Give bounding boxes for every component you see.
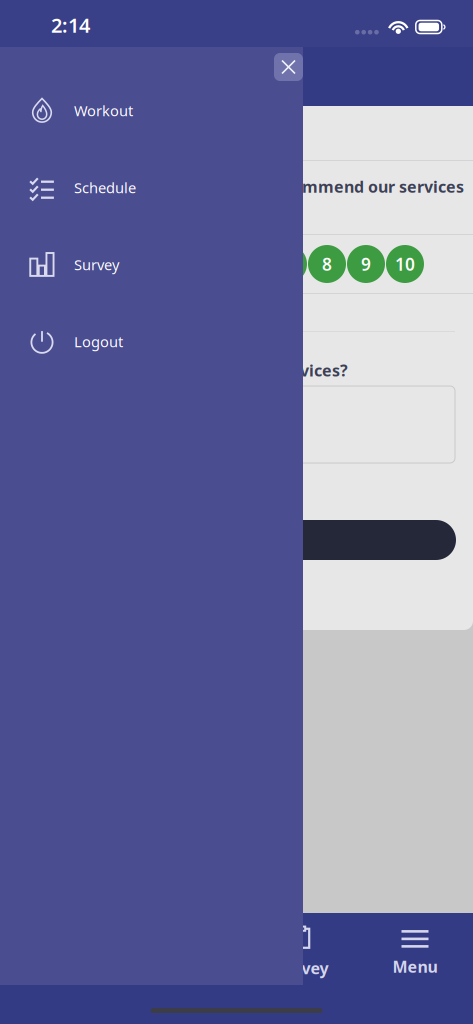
staticText: How likely is it that you would recommen…	[22, 176, 464, 197]
staticText: Menu	[392, 956, 437, 977]
button[interactable]: Menu	[358, 913, 471, 985]
staticText: Workout	[74, 101, 133, 120]
staticText: Survey	[74, 255, 119, 274]
staticText: 9	[361, 252, 371, 275]
button[interactable]: Schedule	[0, 149, 303, 226]
button[interactable]: Close menu	[274, 53, 303, 81]
staticText: Schedule	[74, 178, 136, 197]
staticText: What can we do to improve our services?	[22, 360, 348, 381]
staticText: Logout	[74, 332, 123, 351]
button[interactable]: Survey	[245, 913, 358, 985]
staticText: 8	[322, 252, 332, 275]
staticText: 10	[395, 252, 415, 275]
staticText: 2:14	[51, 12, 90, 38]
button[interactable]: Survey	[0, 226, 303, 303]
staticText: Survey	[275, 957, 328, 979]
button[interactable]: Logout	[0, 303, 303, 380]
button[interactable]: Workout	[0, 72, 303, 149]
